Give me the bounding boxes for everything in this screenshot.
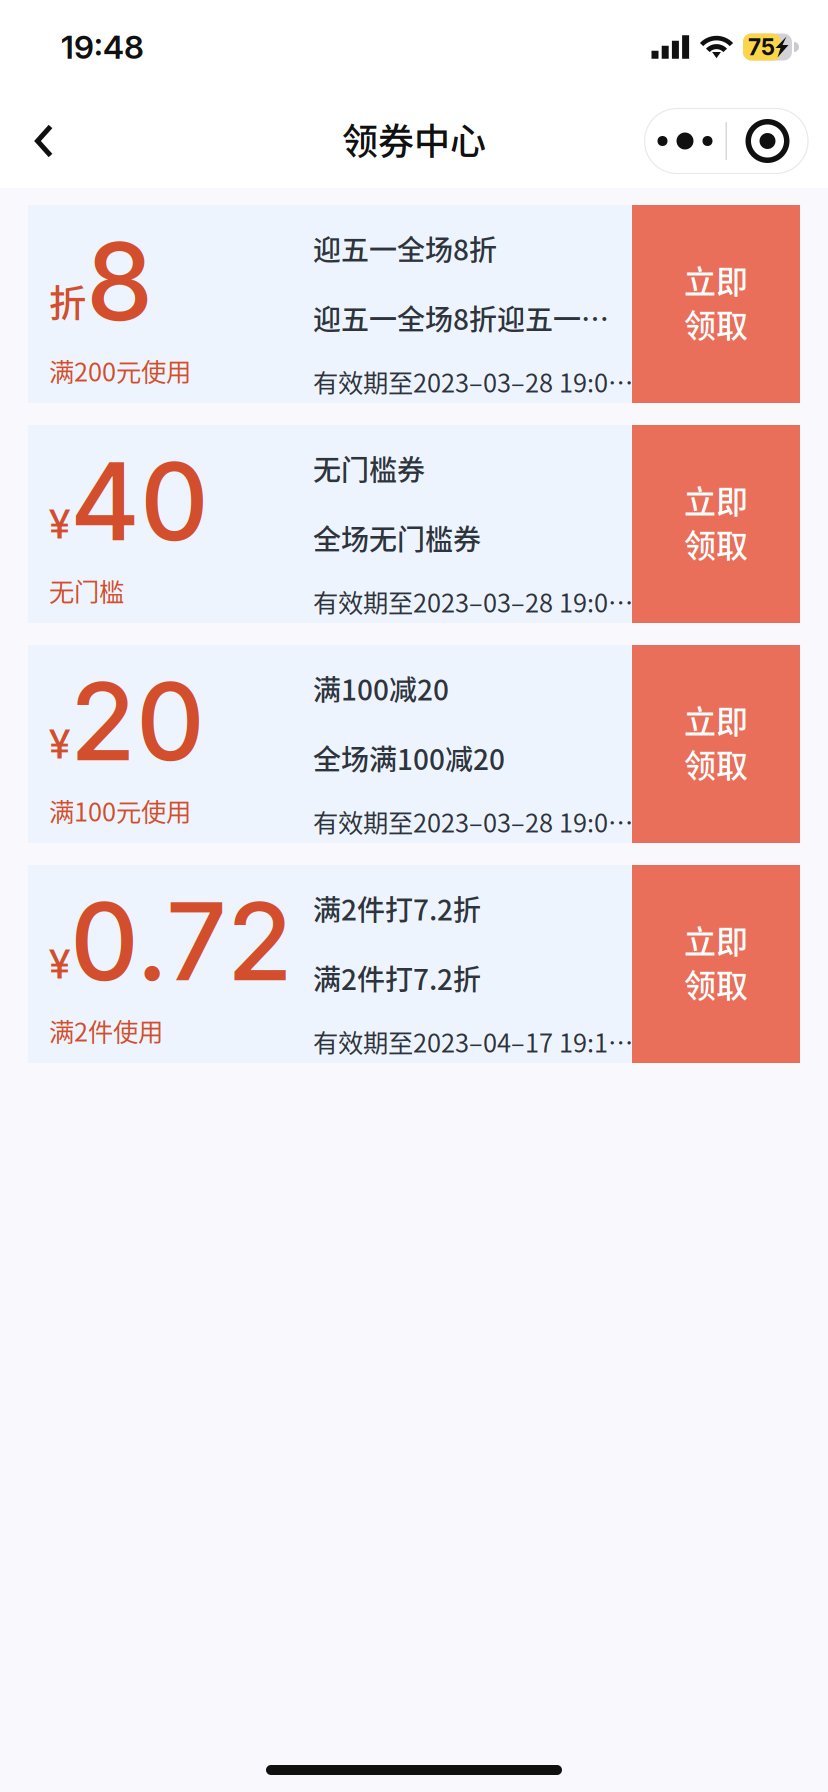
staticText: 满100元使用 [49,792,191,829]
staticText: 领取 [684,300,748,347]
staticText: 立即 [684,916,748,963]
staticText: 有效期至2023–03–28 19:00:00 [313,583,637,620]
staticText: 领券中心 [342,113,486,165]
staticText: 领取 [684,740,748,787]
staticText: 无门槛券 [313,448,425,488]
staticText: 满2件打7.2折 [313,957,481,998]
staticText: 有效期至2023–03–28 19:00:00 [313,803,637,840]
staticText: 无门槛 [49,572,124,609]
button[interactable]: Back [0,94,88,188]
button[interactable]: 立即 [632,425,800,623]
staticText: 0.72 [70,877,293,1006]
staticText: 全场无门槛券 [313,517,481,558]
staticText: 有效期至2023–03–28 19:00:00 [313,363,637,400]
staticText: 折 [49,274,86,328]
staticText: 迎五一全场8折 [313,228,497,268]
staticText: 领取 [684,520,748,567]
button[interactable]: 立即 [632,865,800,1063]
staticText: 满200元使用 [49,352,191,389]
staticText: 满100减20 [313,668,449,708]
staticText: 75 [748,33,775,61]
button[interactable]: 立即 [632,205,800,403]
staticText: 全场满100减20 [313,737,505,778]
staticText: 领取 [684,960,748,1007]
staticText: ¥ [49,500,70,548]
staticText: 迎五一全场8折迎五一折扣 [313,297,629,338]
staticText: 满2件打7.2折 [313,888,481,928]
staticText: 8 [86,217,153,346]
staticText: 19:48 [61,28,144,66]
staticText: 20 [70,657,205,786]
staticText: 40 [70,437,209,566]
button[interactable]: More options [644,108,808,173]
staticText: 有效期至2023–04–17 19:10:00 [313,1023,637,1060]
staticText: ¥ [49,940,70,988]
staticText: 满2件使用 [49,1012,163,1049]
button[interactable]: 立即 [632,645,800,843]
staticText: ¥ [49,720,70,768]
staticText: 立即 [684,476,748,523]
staticText: 立即 [684,256,748,303]
staticText: 立即 [684,696,748,743]
